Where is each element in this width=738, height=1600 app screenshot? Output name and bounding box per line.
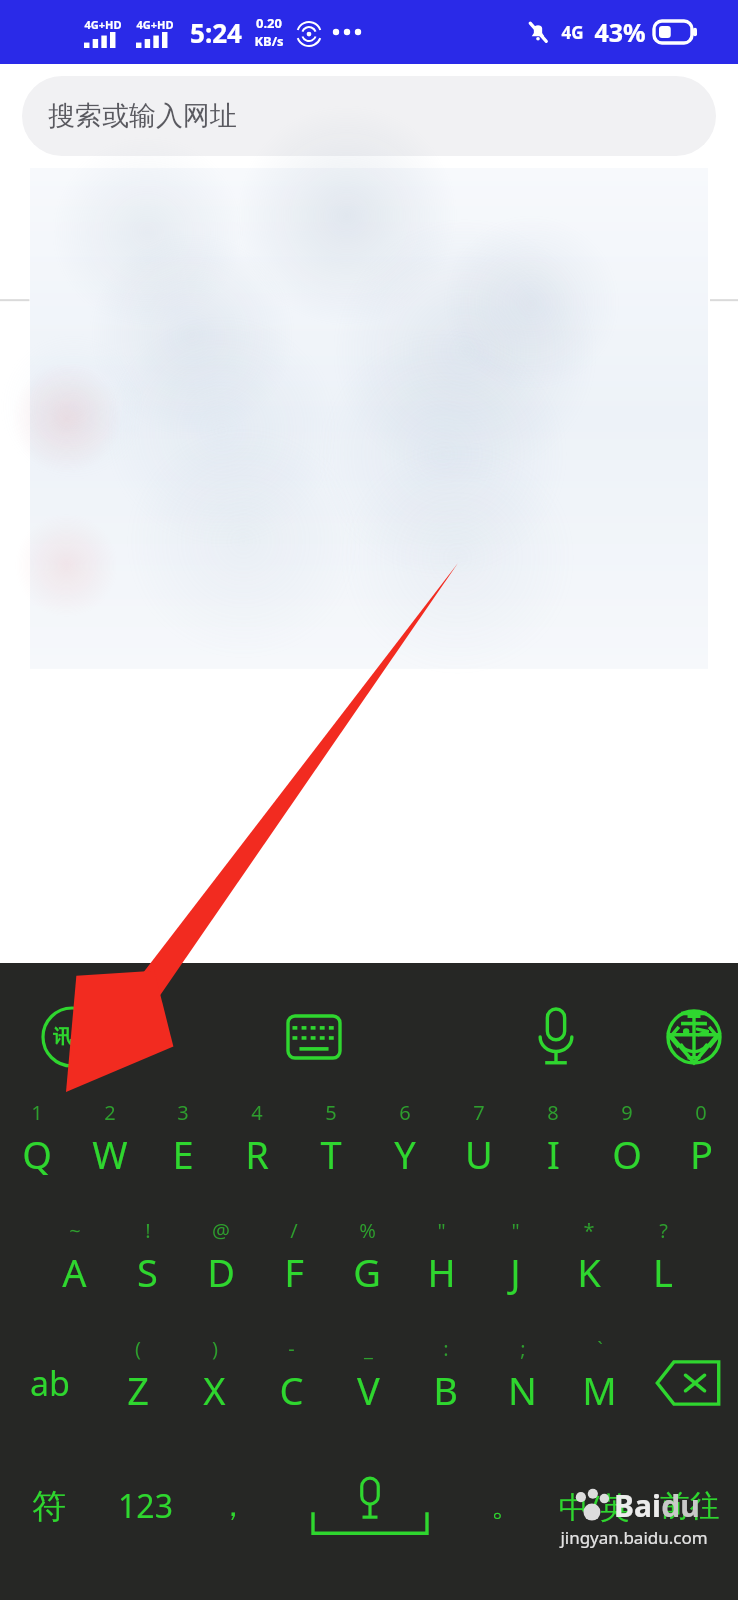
staticText: T xyxy=(320,1128,342,1180)
staticText: 讯飞 xyxy=(53,1025,91,1049)
button[interactable]: % xyxy=(330,1217,404,1313)
staticText: 9 xyxy=(621,1099,633,1126)
staticText: A xyxy=(62,1246,87,1298)
staticText: 8 xyxy=(547,1099,559,1126)
button[interactable]: 。 xyxy=(466,1451,546,1561)
staticText: _ xyxy=(364,1335,373,1362)
staticText: ` xyxy=(597,1335,603,1362)
button[interactable]: 0 xyxy=(664,1099,738,1195)
button[interactable]: ! xyxy=(111,1217,184,1313)
button[interactable]: ~ xyxy=(38,1217,111,1313)
staticText: P xyxy=(690,1128,713,1180)
staticText: H xyxy=(427,1246,456,1298)
staticText: ， xyxy=(218,1487,248,1525)
staticText: 43% xyxy=(594,15,646,49)
button[interactable]: * xyxy=(552,1217,626,1313)
button[interactable]: 5 xyxy=(294,1099,368,1195)
staticText: " xyxy=(437,1217,446,1244)
button[interactable]: ， xyxy=(193,1451,273,1561)
button[interactable]: Space xyxy=(273,1451,466,1561)
staticText: KB/s xyxy=(254,32,284,50)
staticText: / xyxy=(290,1217,298,1244)
staticText: 6 xyxy=(399,1099,411,1126)
button[interactable]: 3 xyxy=(146,1099,220,1195)
staticText: C xyxy=(279,1364,304,1416)
staticText: % xyxy=(359,1217,376,1244)
staticText: ? xyxy=(659,1217,668,1244)
staticText: Y xyxy=(394,1128,416,1180)
staticText: E xyxy=(172,1128,194,1180)
button[interactable]: ab xyxy=(0,1335,99,1431)
staticText: V xyxy=(357,1364,380,1416)
staticText: R xyxy=(245,1128,269,1180)
staticText: 5 xyxy=(325,1099,337,1126)
staticText: Q xyxy=(22,1128,52,1180)
staticText: ! xyxy=(145,1217,151,1244)
staticText: 0.20 xyxy=(256,14,282,32)
staticText: ; xyxy=(520,1335,526,1362)
staticText: 搜索或输入网址 xyxy=(48,99,237,133)
staticText: S xyxy=(137,1246,158,1298)
button[interactable]: Emoji xyxy=(650,993,738,1081)
button[interactable]: : xyxy=(407,1335,484,1431)
staticText: Z xyxy=(127,1364,149,1416)
button[interactable]: 4 xyxy=(220,1099,294,1195)
button[interactable]: 7 xyxy=(442,1099,516,1195)
button[interactable]: 2 xyxy=(73,1099,146,1195)
button[interactable]: Voice input xyxy=(512,993,600,1081)
staticText: 4G xyxy=(561,21,584,44)
button[interactable]: Move cursor xyxy=(650,993,738,1081)
staticText: X xyxy=(203,1364,226,1416)
staticText: du xyxy=(661,1485,700,1526)
staticText: 7 xyxy=(473,1099,485,1126)
button[interactable]: 123 xyxy=(97,1451,193,1561)
staticText: 符 xyxy=(32,1485,66,1528)
staticText: ( xyxy=(135,1335,141,1362)
staticText: - xyxy=(288,1335,295,1362)
staticText: N xyxy=(508,1364,537,1416)
staticText: ~ xyxy=(69,1217,81,1244)
button[interactable]: ? xyxy=(626,1217,700,1313)
staticText: O xyxy=(612,1128,642,1180)
button[interactable]: 前往 xyxy=(642,1451,738,1561)
button[interactable]: 6 xyxy=(368,1099,442,1195)
button[interactable]: 1 xyxy=(0,1099,73,1195)
staticText: 0 xyxy=(695,1099,707,1126)
button[interactable]: 9 xyxy=(590,1099,664,1195)
button[interactable]: - xyxy=(253,1335,330,1431)
staticText: ) xyxy=(212,1335,218,1362)
button[interactable]: ) xyxy=(176,1335,253,1431)
button[interactable]: Input method logo xyxy=(28,993,116,1081)
staticText: 前往 xyxy=(660,1487,720,1525)
button[interactable]: ; xyxy=(484,1335,561,1431)
staticText: 1 xyxy=(31,1099,43,1126)
button[interactable]: Keyboard layout xyxy=(270,993,358,1081)
staticText: ab xyxy=(30,1360,70,1406)
staticText: M xyxy=(582,1364,617,1416)
staticText: " xyxy=(511,1217,520,1244)
button[interactable]: Backspace xyxy=(638,1335,738,1431)
button[interactable]: " xyxy=(478,1217,552,1313)
button[interactable]: 搜索或输入网址 xyxy=(22,76,716,156)
staticText: W xyxy=(92,1128,128,1180)
button[interactable]: / xyxy=(257,1217,330,1313)
staticText: L xyxy=(653,1246,673,1298)
staticText: I xyxy=(547,1128,560,1180)
staticText: 3 xyxy=(177,1099,189,1126)
button[interactable]: " xyxy=(404,1217,478,1313)
button[interactable]: @ xyxy=(184,1217,257,1313)
button[interactable]: ( xyxy=(99,1335,176,1431)
staticText: @ xyxy=(212,1217,230,1244)
staticText: U xyxy=(465,1128,493,1180)
staticText: 。 xyxy=(491,1487,521,1525)
staticText: : xyxy=(443,1335,449,1362)
staticText: 5:24 xyxy=(190,15,242,50)
button[interactable]: 中/英 xyxy=(546,1451,642,1561)
staticText: 中/英 xyxy=(558,1486,630,1527)
button[interactable]: Hide keyboard xyxy=(650,993,738,1081)
button[interactable]: 符 xyxy=(0,1451,97,1561)
button[interactable]: ` xyxy=(561,1335,638,1431)
button[interactable]: 8 xyxy=(516,1099,590,1195)
button[interactable]: _ xyxy=(330,1335,407,1431)
staticText: 4 xyxy=(251,1099,263,1126)
